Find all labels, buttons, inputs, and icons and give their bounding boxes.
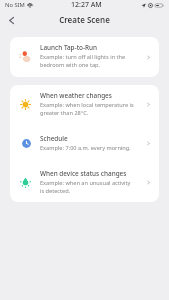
staticText: Example: when local temperature is great… (40, 101, 134, 116)
button[interactable]: Back (5, 14, 18, 27)
staticText: Example: turn off all lights in the bedr… (40, 53, 126, 68)
staticText: Example: 7:00 a.m. every morning. (40, 144, 131, 152)
staticText: Schedule (40, 134, 68, 143)
button[interactable]: Launch Tap-to-Run (10, 37, 159, 77)
staticText: When weather changes (40, 91, 112, 100)
button[interactable]: When device status changes (10, 163, 159, 202)
staticText: No SIM (5, 1, 25, 9)
button[interactable]: Schedule (10, 124, 159, 163)
staticText: 12:27 AM (71, 0, 102, 10)
staticText: Create Scene (59, 14, 110, 25)
button[interactable]: When weather changes (10, 85, 159, 124)
staticText: When device status changes (40, 169, 127, 178)
staticText: Example: when an unusual activity is det… (40, 179, 131, 194)
staticText: Launch Tap-to-Run (40, 43, 98, 52)
